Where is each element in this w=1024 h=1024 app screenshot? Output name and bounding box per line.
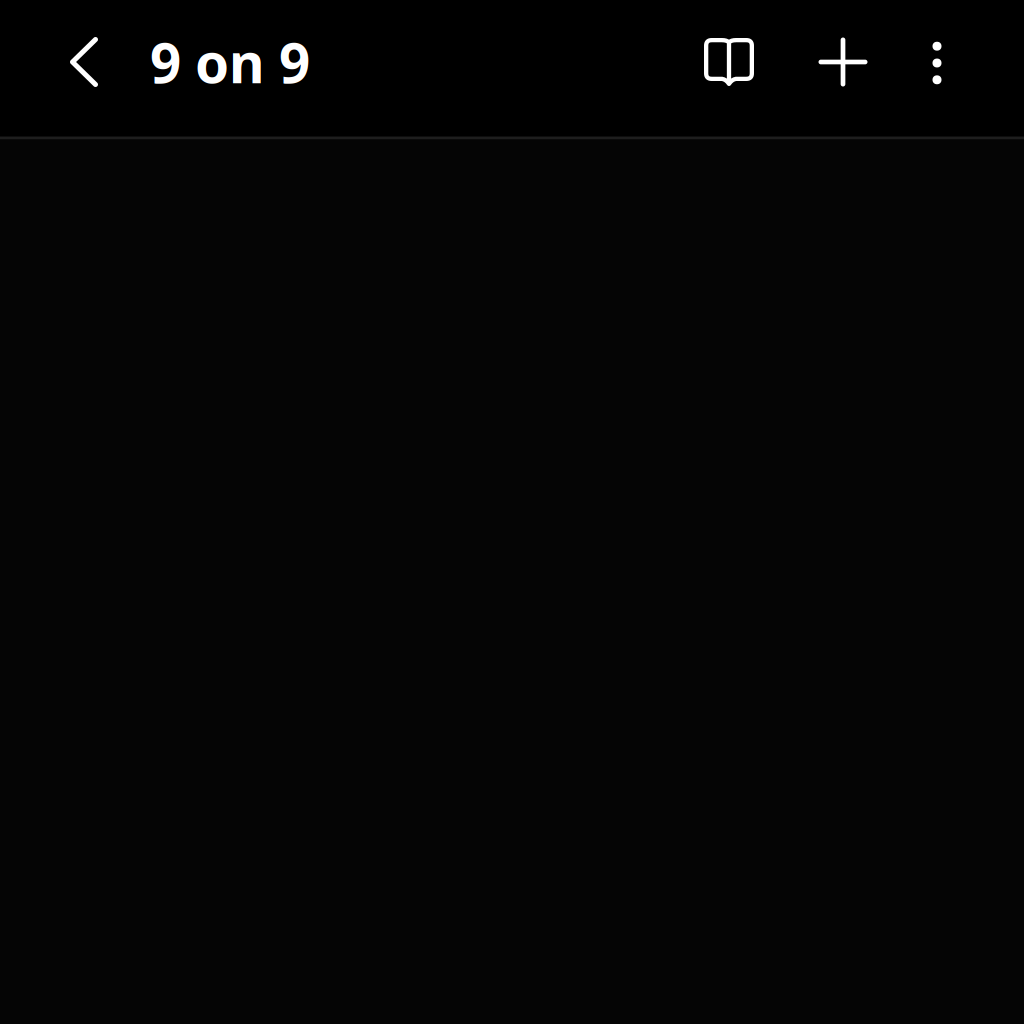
button[interactable]: Back [44,0,124,124]
button[interactable]: Reading mode [666,0,792,124]
button[interactable]: More options [894,0,980,124]
staticText: 9 on 9 [150,26,310,98]
button[interactable]: Add [792,0,894,124]
